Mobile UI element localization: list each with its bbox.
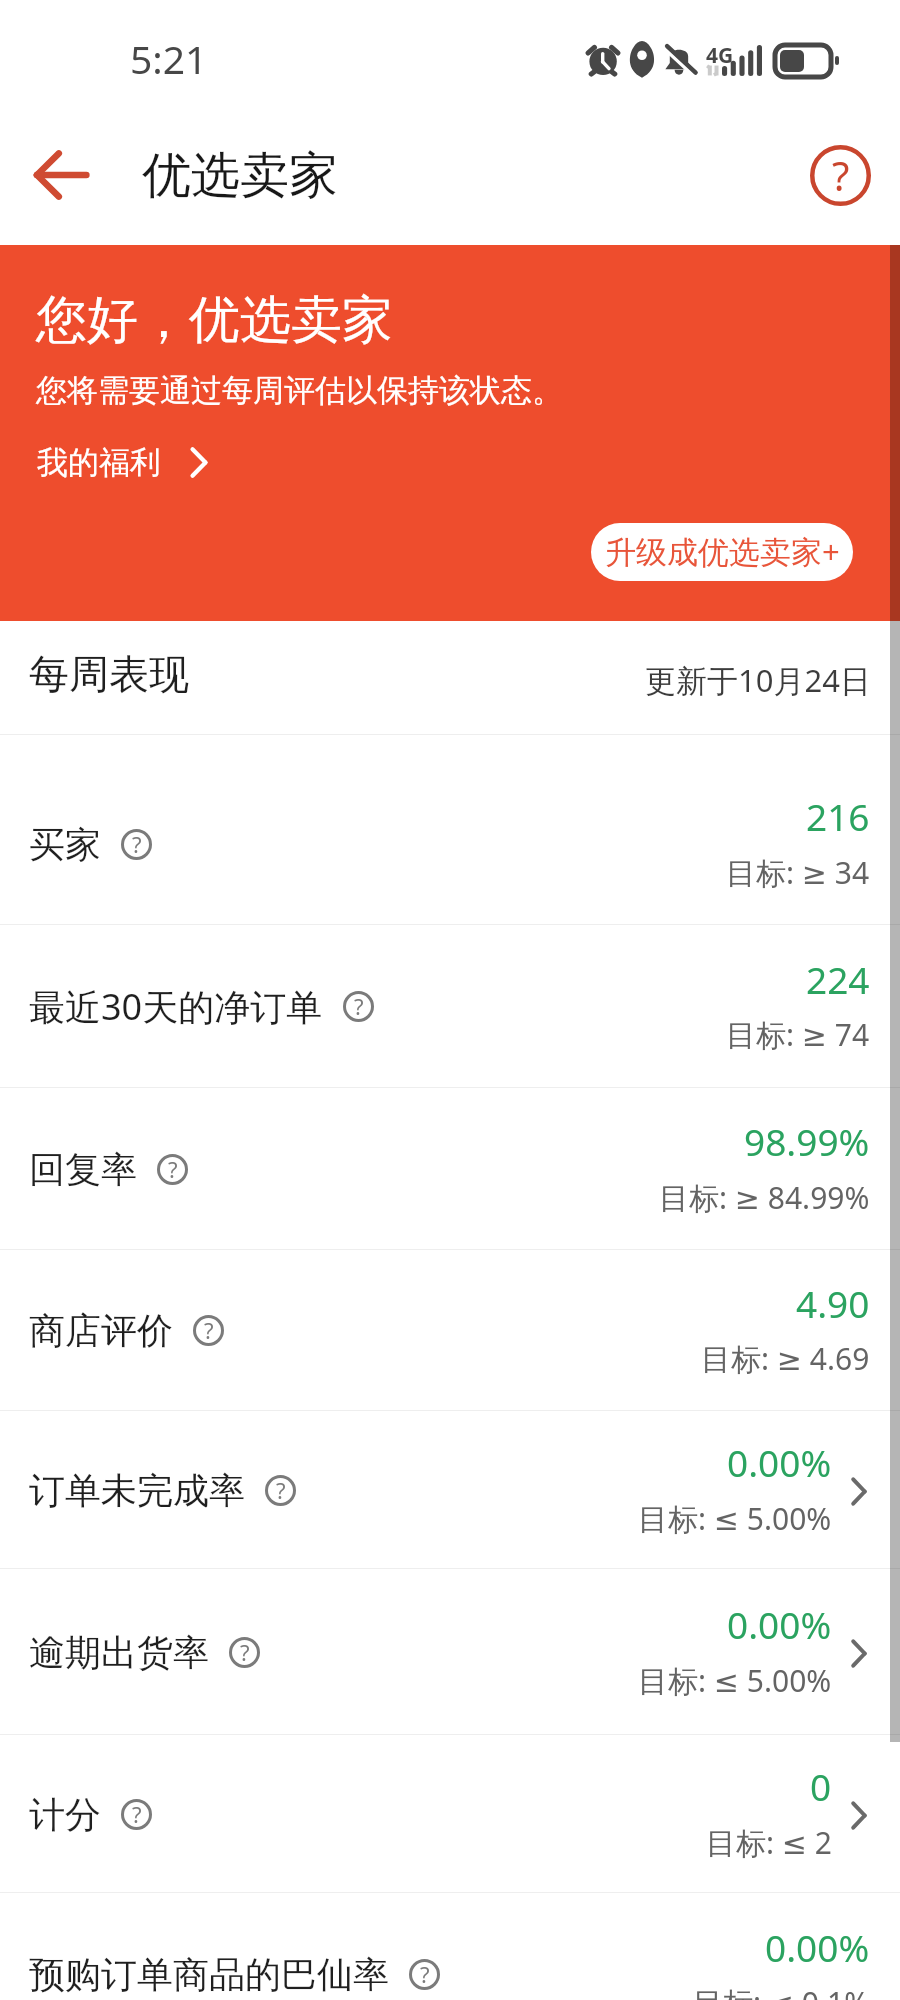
- staticText: 目标: ≥ 4.69: [701, 1338, 870, 1379]
- staticText: 目标: ≤ 5.00%: [638, 1498, 832, 1539]
- staticText: ?: [832, 148, 850, 202]
- staticText: ?: [240, 1637, 250, 1667]
- button[interactable]: 回复率: [0, 1087, 900, 1249]
- staticText: 订单未完成率: [29, 1468, 245, 1513]
- staticText: 5:21: [130, 32, 208, 85]
- button[interactable]: 计分: [0, 1734, 900, 1892]
- staticText: 回复率: [29, 1147, 137, 1192]
- button[interactable]: 商店评价: [0, 1249, 900, 1410]
- button[interactable]: 逾期出货率: [0, 1568, 900, 1734]
- staticText: 224: [806, 954, 870, 1004]
- button[interactable]: 最近30天的净订单: [0, 924, 900, 1087]
- staticText: 目标: ≤ 2: [706, 1822, 832, 1863]
- staticText: 目标: ≥ 34: [726, 852, 870, 893]
- staticText: 您将需要通过每周评估以保持该状态。: [36, 371, 563, 410]
- staticText: 4.90: [796, 1278, 870, 1328]
- staticText: 计分: [29, 1792, 101, 1837]
- staticText: 目标: ≥ 74: [726, 1014, 870, 1055]
- staticText: 0.00%: [727, 1599, 832, 1649]
- staticText: ?: [354, 991, 364, 1021]
- staticText: 216: [806, 791, 870, 841]
- staticText: 目标: ≥ 84.99%: [659, 1177, 870, 1218]
- staticText: 商店评价: [29, 1308, 173, 1353]
- staticText: ?: [204, 1315, 214, 1345]
- staticText: 买家: [29, 822, 101, 867]
- staticText: 0.00%: [727, 1437, 832, 1487]
- staticText: 逾期出货率: [29, 1630, 209, 1675]
- staticText: ?: [276, 1475, 286, 1505]
- staticText: 4G: [706, 41, 734, 70]
- staticText: 每周表现: [29, 649, 189, 699]
- button[interactable]: Help: [802, 137, 878, 213]
- staticText: 优选卖家: [142, 145, 338, 207]
- staticText: 0: [810, 1761, 832, 1811]
- staticText: 98.99%: [744, 1116, 870, 1166]
- button[interactable]: 买家: [0, 734, 900, 924]
- staticText: 更新于10月24日: [645, 659, 871, 701]
- staticText: ?: [168, 1154, 178, 1184]
- button[interactable]: 升级成优选卖家+: [591, 523, 853, 581]
- button[interactable]: Back: [21, 135, 101, 215]
- button[interactable]: 订单未完成率: [0, 1410, 900, 1568]
- staticText: 我的福利: [37, 443, 161, 482]
- button[interactable]: 预购订单商品的巴仙率: [0, 1892, 900, 2000]
- staticText: ?: [132, 1799, 142, 1829]
- staticText: 目标: ≤ 0.1%: [693, 1982, 870, 2000]
- staticText: 0.00%: [765, 1922, 870, 1972]
- button[interactable]: 我的福利: [37, 443, 208, 482]
- staticText: ?: [132, 829, 142, 859]
- staticText: 您好，优选卖家: [36, 288, 393, 352]
- staticText: 目标: ≤ 5.00%: [638, 1660, 832, 1701]
- staticText: 最近30天的净订单: [29, 982, 323, 1031]
- staticText: 升级成优选卖家+: [605, 530, 840, 572]
- staticText: 预购订单商品的巴仙率: [29, 1952, 389, 1997]
- staticText: ?: [420, 1959, 430, 1989]
